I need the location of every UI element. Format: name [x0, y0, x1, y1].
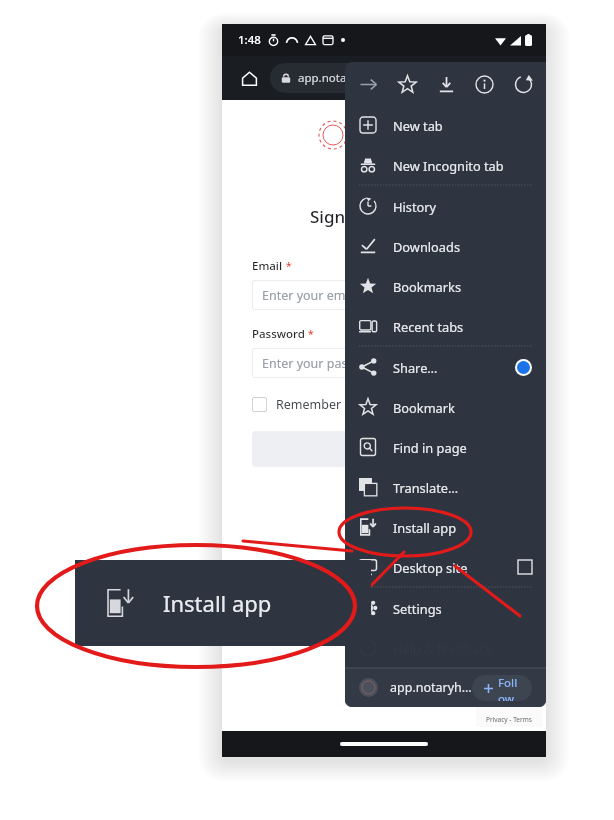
button[interactable]: Downloads: [345, 226, 546, 266]
button[interactable]: Install app: [345, 507, 546, 547]
button[interactable]: Help & feedback: [345, 628, 546, 668]
button[interactable]: Reload: [506, 67, 540, 101]
staticText: app.notaryh…: [390, 679, 472, 696]
staticText: New Incognito tab: [393, 157, 504, 174]
staticText: *: [305, 326, 314, 341]
button[interactable]: Share…: [345, 347, 546, 387]
staticText: *: [283, 258, 292, 273]
staticText: Bookmark: [393, 399, 455, 416]
staticText: Privacy - Terms: [486, 715, 532, 724]
button[interactable]: [252, 431, 536, 467]
staticText: Follow: [498, 675, 520, 701]
staticText: Install app: [393, 519, 457, 536]
button[interactable]: Enter your password: [252, 348, 536, 378]
button[interactable]: Install app: [75, 560, 371, 646]
button[interactable]: Bookmark: [390, 67, 424, 101]
button[interactable]: New tab: [345, 105, 546, 145]
staticText: Downloads: [393, 238, 461, 255]
button[interactable]: New Incognito tab: [345, 145, 546, 185]
staticText: Password: [252, 326, 305, 342]
button[interactable]: Forward: [351, 67, 385, 101]
button[interactable]: Settings: [345, 588, 546, 628]
button[interactable]: Desktop site: [345, 547, 546, 587]
staticText: Desktop site: [393, 559, 468, 576]
button[interactable]: Bookmarks: [345, 266, 546, 306]
staticText: Recent tabs: [393, 318, 464, 335]
button[interactable]: [252, 397, 267, 412]
button[interactable]: Download page: [429, 67, 463, 101]
button[interactable]: Recent tabs: [345, 306, 546, 346]
button[interactable]: Enter your email: [252, 280, 536, 310]
button[interactable]: Page info: [467, 67, 501, 101]
staticText: Bookmarks: [393, 278, 462, 295]
staticText: History: [393, 198, 437, 215]
staticText: 1:48: [238, 32, 261, 48]
button[interactable]: app.notaryhub.io: [270, 63, 486, 93]
staticText: New tab: [393, 117, 443, 134]
staticText: Enter your password: [262, 355, 384, 372]
staticText: Remember Me: [276, 396, 363, 413]
button[interactable]: Home: [236, 65, 262, 91]
button[interactable]: Translate…: [345, 467, 546, 507]
staticText: Share…: [393, 359, 438, 376]
staticText: Settings: [393, 600, 442, 617]
staticText: Find in page: [393, 439, 467, 456]
button[interactable]: History: [345, 186, 546, 226]
staticText: Enter your email: [262, 287, 359, 304]
staticText: Translate…: [393, 479, 459, 496]
button[interactable]: Follow: [472, 675, 532, 701]
staticText: app.notaryhub.io: [298, 70, 392, 86]
button[interactable]: Find in page: [345, 427, 546, 467]
button[interactable]: Bookmark: [345, 387, 546, 427]
staticText: Install app: [163, 588, 272, 618]
staticText: Email: [252, 258, 283, 274]
staticText: Sign In: [310, 205, 367, 228]
